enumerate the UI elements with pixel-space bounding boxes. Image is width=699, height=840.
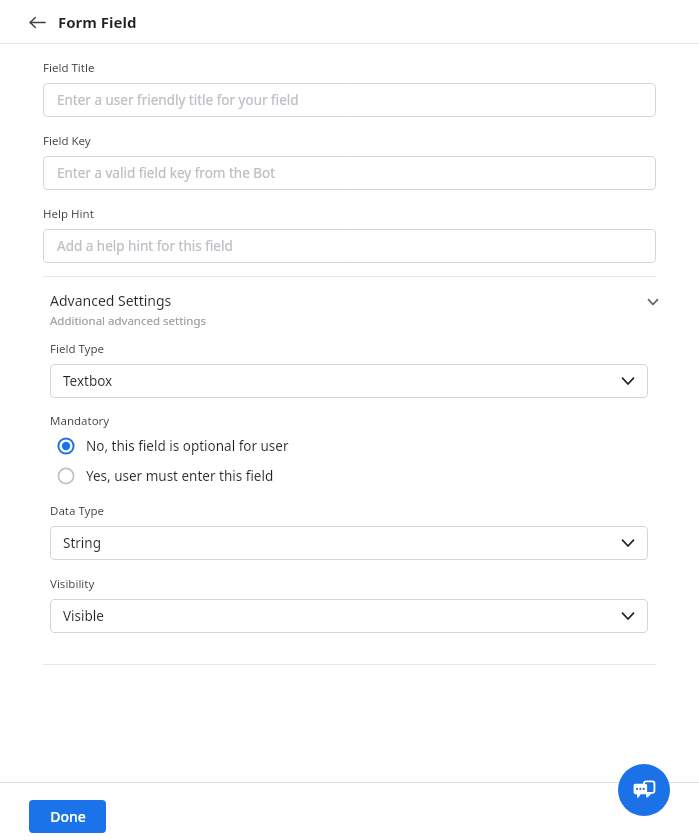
staticText: Visible [63,607,104,625]
staticText: Yes, user must enter this field [86,467,274,485]
button[interactable]: No, this field is optional for user [50,431,648,461]
button[interactable]: String [50,526,648,560]
staticText: Form Field [58,12,137,32]
staticText: Help Hint [43,206,94,222]
button[interactable]: Done [29,800,106,833]
button[interactable]: Add a help hint for this field [43,229,656,263]
button[interactable]: Yes, user must enter this field [50,461,648,491]
staticText: Add a help hint for this field [57,237,233,255]
staticText: Advanced Settings [50,291,172,310]
staticText: Field Key [43,133,91,149]
staticText: Mandatory [50,413,110,429]
button[interactable]: Open chat support [618,764,670,816]
staticText: Field Title [43,60,95,76]
staticText: Visibility [50,576,95,592]
staticText: Additional advanced settings [50,313,206,329]
staticText: Enter a valid field key from the Bot [57,164,276,182]
staticText: No, this field is optional for user [86,437,289,455]
staticText: String [63,534,101,552]
button[interactable]: Visible [50,599,648,633]
button[interactable]: Textbox [50,364,648,398]
staticText: Data Type [50,503,105,519]
staticText: Enter a user friendly title for your fie… [57,91,299,109]
staticText: Done [50,807,86,826]
staticText: Textbox [63,372,113,390]
button[interactable]: Back [22,7,52,37]
button[interactable]: Enter a valid field key from the Bot [43,156,656,190]
button[interactable]: Enter a user friendly title for your fie… [43,83,656,117]
staticText: Field Type [50,341,105,357]
button[interactable]: Advanced Settings [0,291,699,329]
